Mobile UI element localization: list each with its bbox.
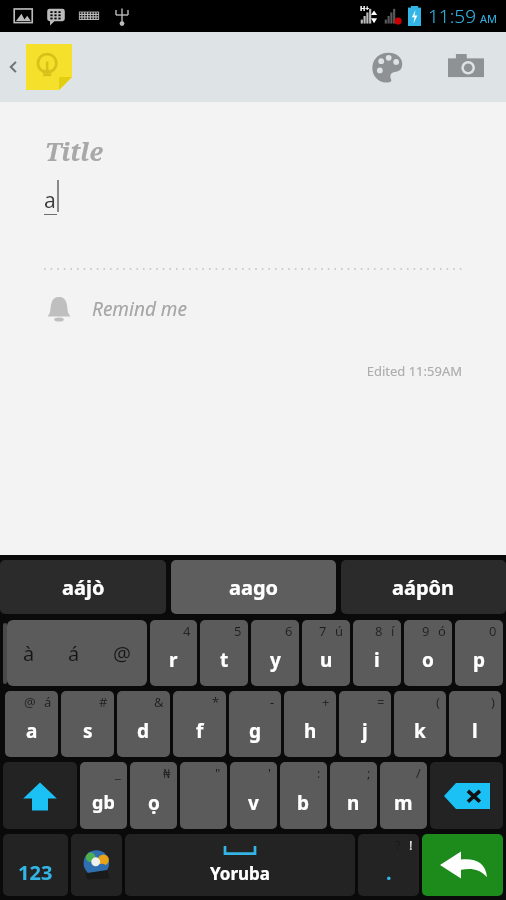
button[interactable]: 8: [353, 620, 401, 686]
button[interactable]: aago: [171, 560, 336, 614]
staticText: t: [220, 647, 229, 673]
staticText: *: [212, 693, 220, 711]
button[interactable]: *: [173, 691, 226, 757]
button[interactable]: Title: [45, 134, 103, 168]
button[interactable]: Navigate up, Keep: [6, 32, 72, 102]
staticText: -: [270, 693, 275, 711]
staticText: ọ: [148, 790, 160, 816]
button[interactable]: @: [5, 691, 58, 757]
staticText: j: [362, 718, 368, 744]
button[interactable]: 123: [3, 834, 68, 896]
staticText: @: [24, 693, 36, 711]
staticText: Remind me: [92, 296, 187, 322]
staticText: í: [391, 622, 395, 640]
staticText: ú: [335, 622, 344, 640]
staticText: a: [44, 186, 56, 215]
staticText: o: [422, 647, 434, 673]
staticText: 123: [18, 859, 53, 886]
staticText: á: [68, 640, 80, 667]
staticText: p: [473, 647, 486, 673]
button[interactable]: 5: [200, 620, 248, 686]
button[interactable]: ₦: [130, 762, 177, 829]
staticText: d: [137, 718, 150, 744]
staticText: 5: [234, 622, 242, 640]
staticText: h: [304, 718, 317, 744]
button[interactable]: ): [449, 691, 501, 757]
staticText: y: [270, 647, 281, 673]
button[interactable]: _: [80, 762, 127, 829]
staticText: 8: [375, 622, 383, 640]
button[interactable]: +: [284, 691, 336, 757]
button[interactable]: enter: [422, 834, 503, 896]
button[interactable]: ': [230, 762, 277, 829]
staticText: 9: [422, 622, 430, 640]
staticText: a: [26, 718, 38, 744]
staticText: 7: [319, 622, 327, 640]
button[interactable]: Remind me: [44, 294, 506, 324]
staticText: =: [377, 693, 385, 711]
staticText: !: [409, 836, 413, 854]
staticText: 11:59: [428, 3, 477, 29]
staticText: g: [249, 718, 262, 744]
button[interactable]: shift: [3, 762, 77, 829]
staticText: gb: [92, 790, 115, 815]
button[interactable]: /: [380, 762, 427, 829]
staticText: @: [113, 640, 131, 667]
button[interactable]: aájò: [0, 560, 166, 614]
staticText: H+: [360, 4, 370, 14]
staticText: á: [44, 693, 52, 711]
button[interactable]: Add photo: [438, 39, 494, 95]
staticText: l: [472, 718, 478, 744]
button[interactable]: 4: [150, 620, 197, 686]
button[interactable]: -: [229, 691, 281, 757]
button[interactable]: &: [117, 691, 170, 757]
staticText: b: [297, 790, 310, 816]
staticText: #: [99, 693, 108, 711]
button[interactable]: Yoruba: [125, 834, 355, 896]
staticText: .: [386, 859, 392, 886]
staticText: ": [215, 764, 221, 782]
staticText: &: [154, 693, 164, 711]
staticText: /: [416, 764, 421, 782]
staticText: 4: [183, 622, 191, 640]
button[interactable]: ;: [330, 762, 377, 829]
staticText: aago: [229, 574, 279, 601]
staticText: ó: [438, 622, 446, 640]
staticText: ₦: [163, 764, 171, 782]
staticText: aájò: [62, 574, 105, 601]
staticText: aápôn: [392, 574, 455, 601]
staticText: n: [347, 790, 360, 816]
button[interactable]: =: [339, 691, 391, 757]
staticText: 6: [285, 622, 293, 640]
button[interactable]: (: [394, 691, 446, 757]
staticText: Yoruba: [210, 862, 270, 885]
staticText: +: [322, 693, 330, 711]
staticText: ': [268, 764, 271, 782]
staticText: k: [414, 718, 426, 744]
staticText: _: [115, 764, 121, 782]
button[interactable]: ?: [358, 834, 419, 896]
staticText: Edited 11:59AM: [0, 362, 462, 380]
staticText: f: [196, 718, 204, 744]
button[interactable]: aápôn: [341, 560, 506, 614]
button[interactable]: del: [430, 762, 503, 829]
staticText: :: [317, 764, 321, 782]
button[interactable]: 9: [404, 620, 452, 686]
button[interactable]: #: [61, 691, 114, 757]
staticText: m: [394, 790, 413, 816]
button[interactable]: 6: [251, 620, 299, 686]
staticText: v: [248, 790, 259, 816]
staticText: u: [320, 647, 333, 673]
staticText: 0: [489, 622, 497, 640]
button[interactable]: 0: [455, 620, 503, 686]
staticText: AM: [480, 11, 498, 26]
button[interactable]: 7: [302, 620, 350, 686]
staticText: r: [169, 647, 178, 673]
button[interactable]: ": [180, 762, 227, 829]
button[interactable]: :: [280, 762, 327, 829]
staticText: i: [374, 647, 380, 673]
button[interactable]: globe: [71, 834, 122, 896]
button[interactable]: Change color: [360, 39, 416, 95]
staticText: s: [83, 718, 93, 744]
